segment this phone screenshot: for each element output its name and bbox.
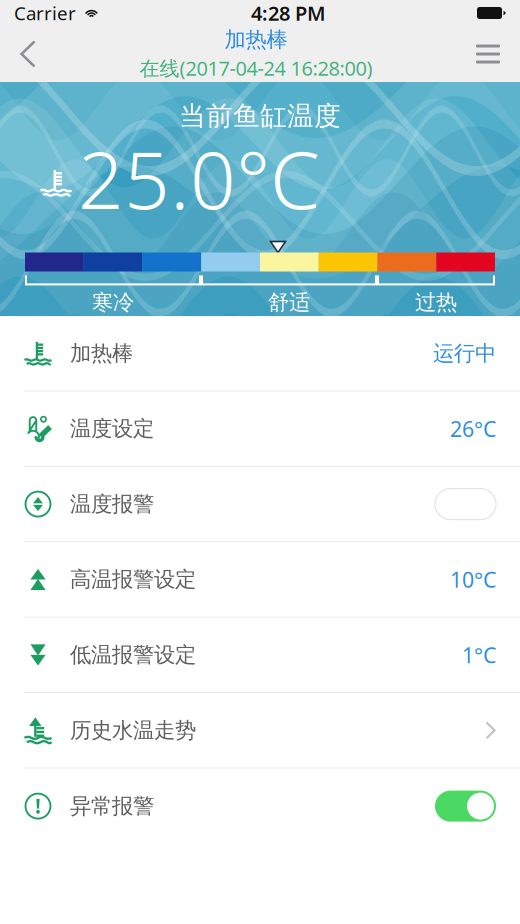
button[interactable]: 历史水温走势 (0, 693, 520, 768)
staticText: Carrier (14, 1, 76, 25)
staticText: 1°C (462, 641, 496, 669)
button[interactable]: 低温报警设定 (0, 618, 520, 693)
staticText: 舒适 (268, 289, 310, 316)
staticText: 当前鱼缸温度 (179, 100, 341, 132)
staticText: 历史水温走势 (70, 717, 196, 743)
staticText: 运行中 (433, 340, 496, 366)
staticText: 25.0°C (78, 125, 320, 231)
button[interactable]: 加热棒 (0, 316, 520, 391)
button[interactable]: 温度报警 (0, 467, 520, 542)
button[interactable]: 高温报警设定 (0, 542, 520, 618)
staticText: 温度设定 (70, 416, 154, 442)
staticText: 4:28 PM (251, 0, 326, 26)
staticText: 加热棒 (224, 27, 287, 53)
button[interactable]: Back (0, 26, 52, 82)
staticText: 26°C (450, 414, 496, 443)
button[interactable]: 温度设定 (0, 391, 520, 467)
staticText: 加热棒 (70, 340, 133, 366)
button[interactable]: 异常报警 (0, 768, 520, 844)
staticText: 10°C (450, 565, 496, 594)
staticText: 在线(2017-04-24 16:28:00) (139, 55, 372, 81)
staticText: 寒冷 (92, 289, 134, 316)
staticText: 过热 (415, 289, 457, 316)
button[interactable]: Menu (460, 26, 520, 82)
staticText: 温度报警 (70, 491, 154, 517)
staticText: 低温报警设定 (70, 642, 196, 668)
staticText: 高温报警设定 (70, 566, 196, 593)
staticText: 异常报警 (70, 793, 154, 819)
